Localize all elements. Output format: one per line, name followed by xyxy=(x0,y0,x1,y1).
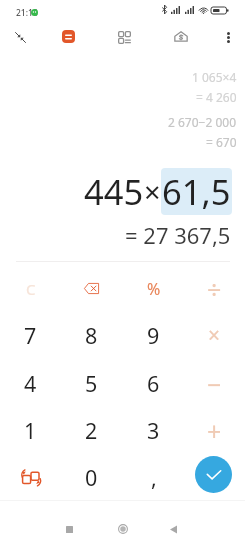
staticText: 1 065×4 xyxy=(192,69,237,85)
staticText: C xyxy=(26,279,36,299)
button[interactable]: Recents xyxy=(55,515,83,543)
staticText: 8 xyxy=(85,321,98,350)
button[interactable]: More options xyxy=(216,25,240,49)
button[interactable]: 9 xyxy=(123,312,184,359)
button[interactable]: 0 xyxy=(61,454,122,501)
staticText: + xyxy=(207,414,222,448)
button[interactable]: 6 xyxy=(123,360,184,407)
staticText: 2 xyxy=(85,416,98,445)
button[interactable]: + xyxy=(184,407,245,454)
button[interactable]: , xyxy=(123,454,184,501)
button[interactable]: × xyxy=(184,312,245,359)
staticText: 0 xyxy=(85,463,98,492)
button[interactable]: C xyxy=(0,265,61,312)
button[interactable]: Converter xyxy=(112,24,136,48)
staticText: 61,5 xyxy=(162,168,231,215)
button[interactable]: 7 xyxy=(0,312,61,359)
button[interactable]: Mortgage xyxy=(169,24,193,48)
staticText: % xyxy=(147,278,161,300)
button[interactable]: 8 xyxy=(61,312,122,359)
staticText: 4 xyxy=(24,369,37,398)
button[interactable]: Home xyxy=(109,515,137,543)
button[interactable]: Collapse xyxy=(8,25,32,49)
staticText: , xyxy=(151,463,157,492)
staticText: − xyxy=(207,367,222,401)
button[interactable] xyxy=(61,265,122,312)
button[interactable]: 5 xyxy=(61,360,122,407)
button[interactable]: 4 xyxy=(0,360,61,407)
staticText: = 27 367,5 xyxy=(125,220,231,250)
button[interactable] xyxy=(0,454,61,501)
staticText: 9 xyxy=(147,321,160,350)
staticText: 6 xyxy=(147,369,160,398)
staticText: = 670 xyxy=(206,134,237,150)
button[interactable]: 3 xyxy=(123,407,184,454)
button[interactable]: 2 xyxy=(61,407,122,454)
staticText: 1 xyxy=(24,416,37,445)
button[interactable]: ÷ xyxy=(184,265,245,312)
staticText: 2 670−2 000 xyxy=(168,114,237,130)
staticText: 5 xyxy=(85,369,98,398)
staticText: × xyxy=(208,321,221,350)
button[interactable]: Back xyxy=(159,515,187,543)
button[interactable]: 1 xyxy=(0,407,61,454)
staticText: 7 xyxy=(24,321,37,350)
staticText: 21:18 xyxy=(16,7,38,19)
button[interactable]: Equals mode xyxy=(56,24,80,48)
button[interactable]: − xyxy=(184,360,245,407)
staticText: 445 xyxy=(84,168,144,215)
button[interactable]: % xyxy=(123,265,184,312)
staticText: 3 xyxy=(147,416,160,445)
staticText: ÷ xyxy=(207,272,222,306)
staticText: = 4 260 xyxy=(196,89,237,105)
button[interactable]: Equals xyxy=(195,456,232,493)
staticText: × xyxy=(144,172,161,211)
